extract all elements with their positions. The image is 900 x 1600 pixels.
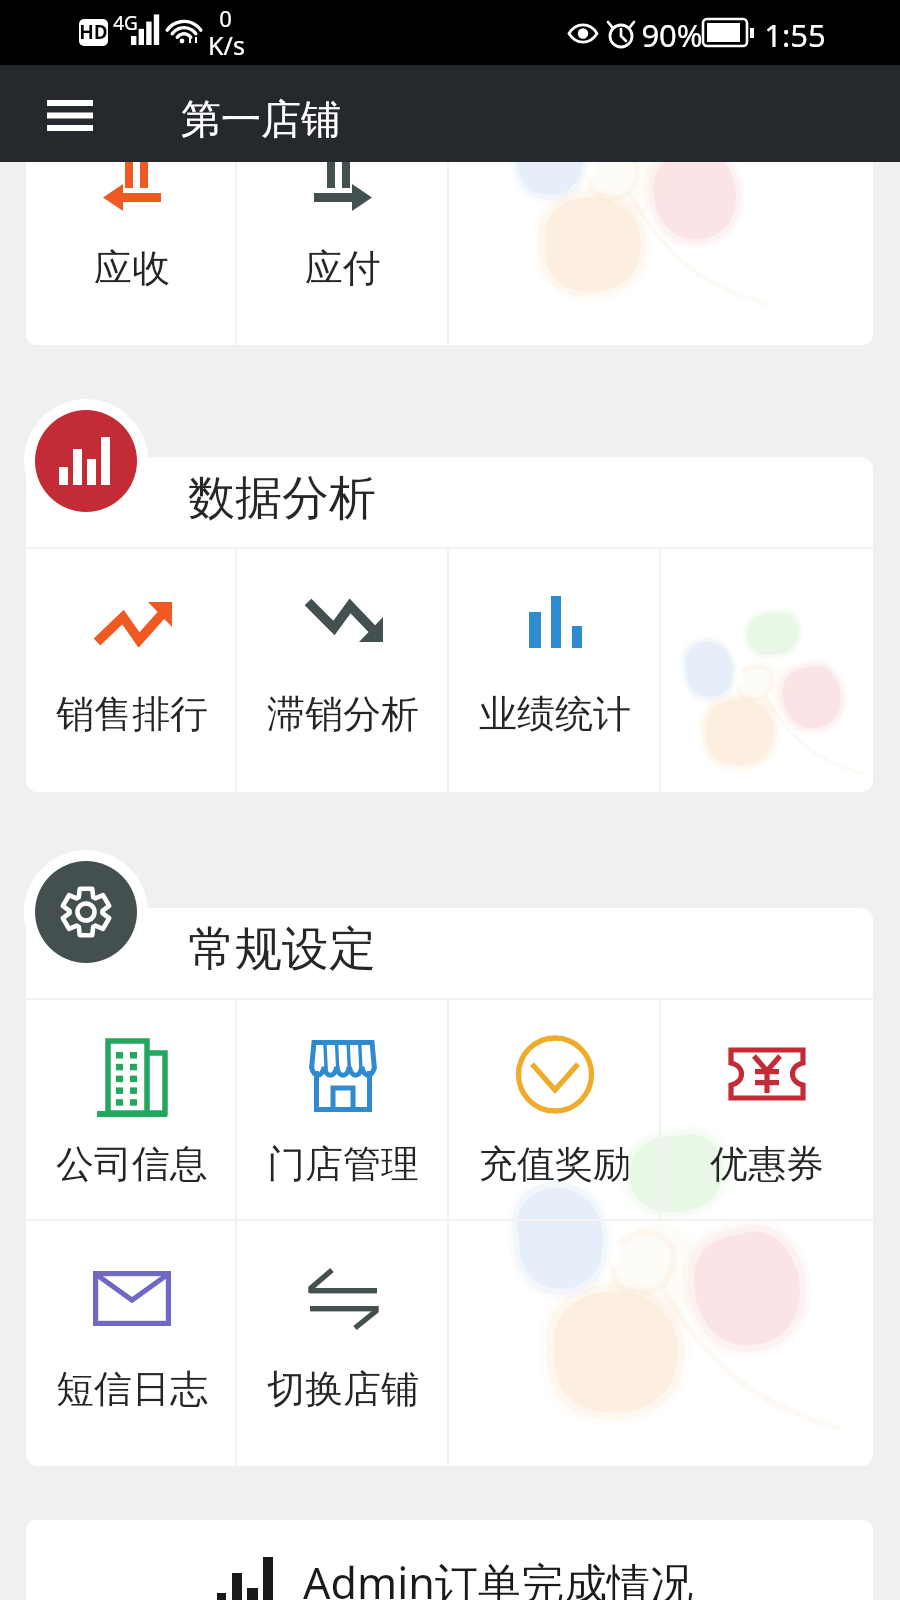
staticText: HD <box>79 19 108 45</box>
staticText: 4G <box>113 10 138 36</box>
staticText: 1:55 <box>764 14 826 56</box>
button[interactable]: 应付 <box>237 162 449 345</box>
button[interactable]: 短信日志 <box>26 1221 237 1466</box>
button[interactable]: 业绩统计 <box>449 549 661 792</box>
staticText: 常规设定 <box>188 920 376 979</box>
button[interactable]: 门店管理 <box>237 1000 449 1219</box>
button[interactable]: 充值奖励 <box>449 1000 661 1219</box>
button[interactable] <box>661 549 873 792</box>
staticText: 应付 <box>305 244 381 292</box>
staticText: 公司信息 <box>56 1140 208 1188</box>
staticText: 90% <box>641 14 703 56</box>
staticText: 切换店铺 <box>267 1365 419 1413</box>
button[interactable]: 应收 <box>26 162 237 345</box>
staticText: 销售排行 <box>56 690 208 738</box>
staticText: 门店管理 <box>267 1140 419 1188</box>
button[interactable]: 优惠券 <box>661 1000 873 1219</box>
button[interactable]: Menu <box>23 65 117 162</box>
staticText: 第一店铺 <box>181 94 341 144</box>
button[interactable]: 销售排行 <box>26 549 237 792</box>
staticText: 优惠券 <box>710 1140 824 1188</box>
staticText: Admin订单完成情况 <box>303 1553 693 1600</box>
staticText: 充值奖励 <box>479 1140 631 1188</box>
button[interactable]: 公司信息 <box>26 1000 237 1219</box>
button[interactable]: Admin订单完成情况 <box>26 1520 873 1600</box>
button[interactable] <box>661 1221 873 1466</box>
button[interactable]: 滞销分析 <box>237 549 449 792</box>
button[interactable] <box>661 162 873 345</box>
staticText: 业绩统计 <box>479 690 631 738</box>
button[interactable]: 常规设定 <box>35 861 137 963</box>
staticText: K/s <box>208 28 245 62</box>
button[interactable]: 数据分析 <box>35 410 137 512</box>
staticText: 滞销分析 <box>267 690 419 738</box>
button[interactable]: 切换店铺 <box>237 1221 449 1466</box>
staticText: 数据分析 <box>188 469 376 528</box>
staticText: 0 <box>219 3 232 33</box>
staticText: 应收 <box>94 244 170 292</box>
button[interactable] <box>449 162 661 345</box>
button[interactable] <box>449 1221 661 1466</box>
staticText: 短信日志 <box>56 1365 208 1413</box>
